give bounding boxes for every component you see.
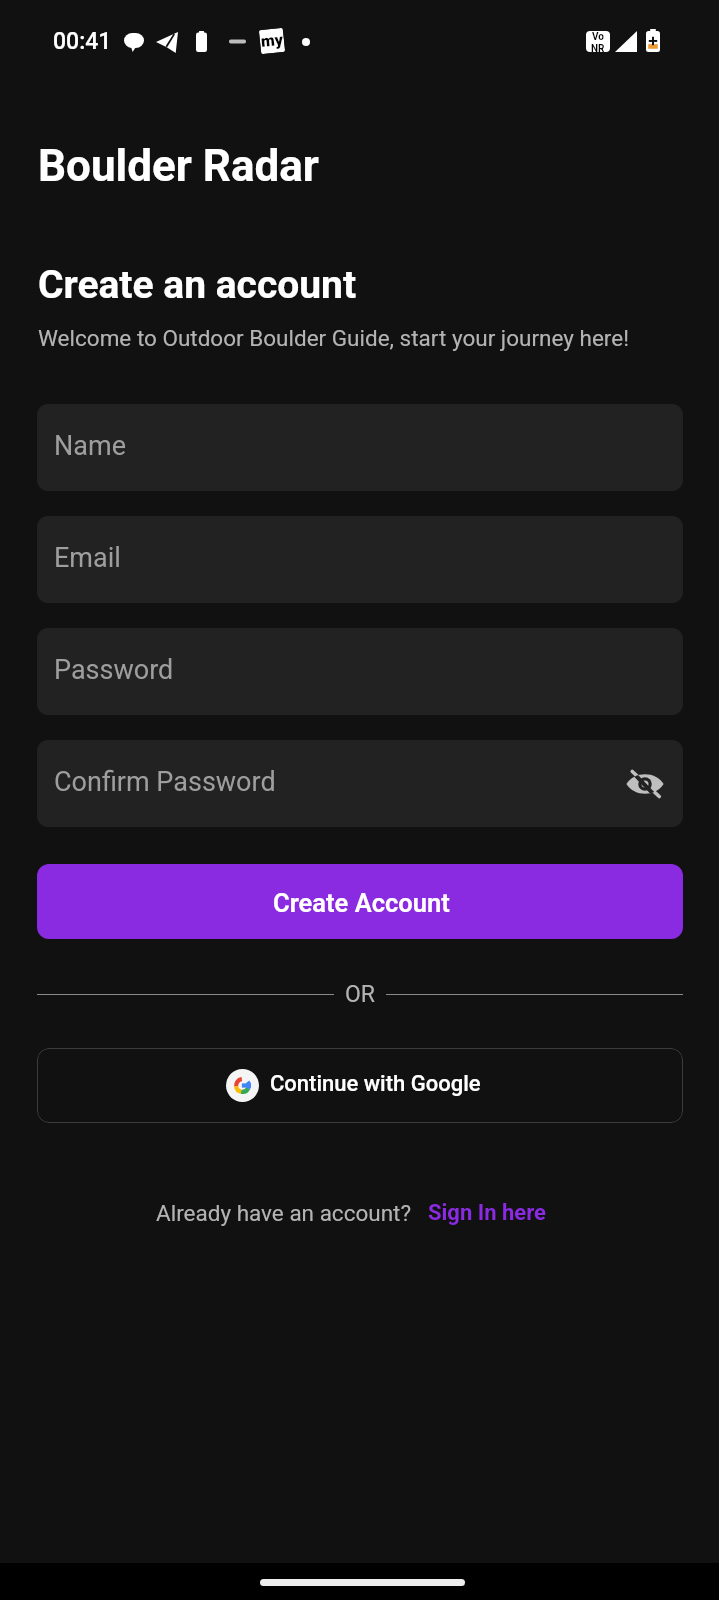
button[interactable]: Sign In here <box>428 1200 546 1226</box>
button[interactable]: Create Account <box>37 864 683 939</box>
button[interactable]: Confirm Password <box>37 740 683 827</box>
button[interactable]: Continue with Google <box>37 1048 683 1123</box>
staticText: Create Account <box>273 888 450 918</box>
staticText: Confirm Password <box>54 766 276 798</box>
button[interactable]: Name <box>37 404 683 491</box>
staticText: Continue with Google <box>270 1071 481 1097</box>
staticText: NR <box>591 43 605 52</box>
staticText: Welcome to Outdoor Boulder Guide, start … <box>38 325 630 351</box>
staticText: Create an account <box>38 262 357 308</box>
staticText: Password <box>54 654 174 686</box>
staticText: Name <box>54 430 126 462</box>
button[interactable]: Password <box>37 628 683 715</box>
button[interactable]: Email <box>37 516 683 603</box>
staticText: Already have an account? <box>156 1200 412 1226</box>
staticText: my <box>260 30 285 51</box>
button[interactable]: Toggle password visibility <box>625 764 665 804</box>
staticText: Sign In here <box>428 1200 546 1226</box>
staticText: Email <box>54 542 121 574</box>
staticText: Vo <box>592 31 604 43</box>
staticText: OR <box>345 981 375 1008</box>
staticText: Boulder Radar <box>38 140 319 192</box>
staticText: 00:41 <box>53 28 112 55</box>
